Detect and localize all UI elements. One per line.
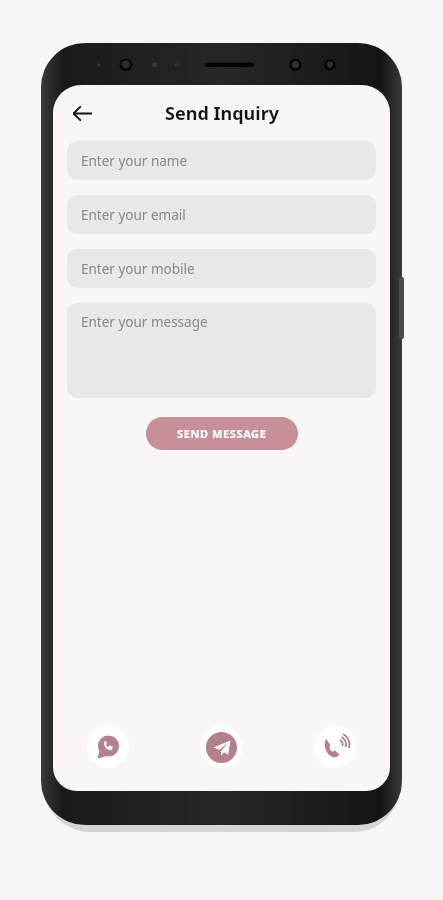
button[interactable]: Enter your mobile [67, 249, 376, 288]
button[interactable]: Enter your name [67, 141, 376, 180]
button[interactable]: Call [314, 726, 356, 768]
button[interactable]: Telegram [200, 726, 242, 768]
staticText: Enter your mobile [81, 260, 195, 278]
button[interactable]: Enter your message [67, 303, 376, 398]
button[interactable]: Enter your email [67, 195, 376, 234]
button[interactable]: Back [61, 92, 103, 134]
staticText: Send Inquiry [165, 101, 279, 126]
staticText: Enter your email [81, 206, 186, 224]
button[interactable]: WhatsApp [87, 726, 129, 768]
button[interactable]: SEND MESSAGE [146, 417, 298, 450]
staticText: Enter your name [81, 152, 188, 170]
staticText: SEND MESSAGE [177, 426, 267, 441]
staticText: Enter your message [81, 313, 208, 331]
